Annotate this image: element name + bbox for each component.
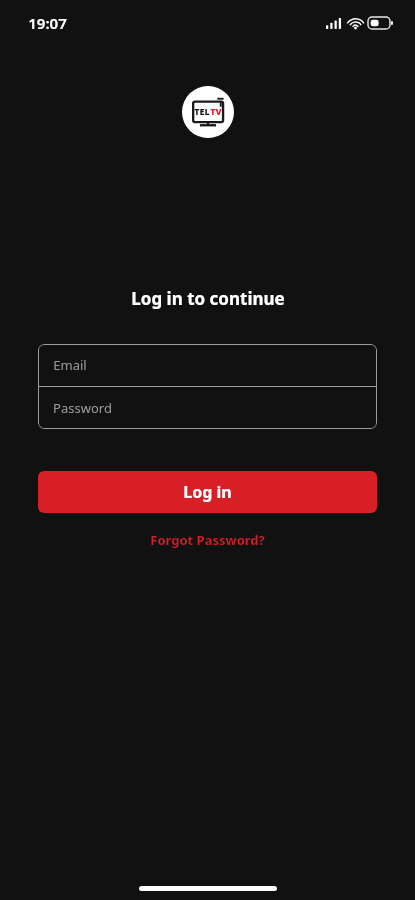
staticText: Log in to continue bbox=[131, 287, 285, 310]
button[interactable]: Forgot Password? bbox=[142, 527, 273, 553]
button[interactable]: Password bbox=[38, 387, 377, 429]
staticText: TEL bbox=[194, 105, 210, 117]
staticText: Forgot Password? bbox=[150, 531, 265, 549]
button[interactable]: Log in bbox=[38, 471, 377, 513]
staticText: 19:07 bbox=[28, 13, 67, 33]
staticText: Log in bbox=[183, 481, 232, 503]
staticText: Password bbox=[53, 399, 112, 417]
staticText: TV bbox=[210, 105, 222, 117]
button[interactable]: Email bbox=[38, 344, 377, 386]
staticText: Email bbox=[53, 356, 87, 374]
